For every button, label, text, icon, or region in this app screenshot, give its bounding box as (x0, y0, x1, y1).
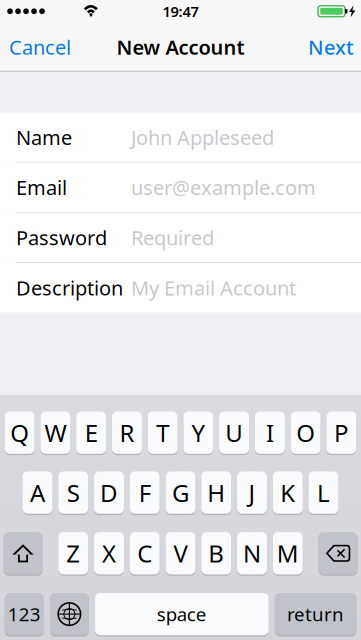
button[interactable]: L (308, 471, 338, 514)
staticText: G (172, 477, 189, 509)
button[interactable]: E (76, 411, 106, 454)
staticText: D (100, 477, 118, 509)
button[interactable]: return (275, 592, 356, 636)
button[interactable]: U (219, 411, 249, 454)
staticText: I (266, 417, 274, 449)
staticText: K (280, 477, 295, 509)
staticText: Next (308, 34, 354, 60)
staticText: Name (16, 124, 72, 150)
button[interactable]: Name (0, 112, 361, 162)
button[interactable]: 123 (5, 592, 44, 636)
staticText: Q (10, 417, 29, 449)
button[interactable]: Delete (318, 531, 357, 575)
staticText: A (30, 477, 45, 509)
staticText: 19:47 (162, 1, 198, 21)
staticText: H (207, 477, 225, 509)
staticText: O (296, 417, 315, 449)
staticText: Description (16, 274, 123, 301)
staticText: return (287, 602, 344, 626)
button[interactable]: C (130, 531, 160, 575)
button[interactable]: M (273, 531, 303, 575)
button[interactable]: O (291, 411, 321, 454)
staticText: L (317, 477, 330, 509)
staticText: Y (191, 417, 205, 449)
button[interactable]: W (40, 411, 70, 454)
button[interactable]: space (95, 592, 269, 636)
button[interactable]: A (22, 471, 52, 514)
staticText: Z (66, 537, 80, 569)
staticText: J (248, 477, 255, 509)
button[interactable]: G (165, 471, 195, 514)
button[interactable]: Next (296, 23, 361, 71)
staticText: E (85, 417, 98, 449)
staticText: B (208, 537, 224, 569)
staticText: C (137, 537, 152, 569)
staticText: John Appleseed (131, 124, 274, 150)
staticText: N (243, 537, 261, 569)
staticText: New Account (116, 34, 244, 60)
button[interactable]: T (148, 411, 178, 454)
staticText: Password (16, 224, 107, 251)
button[interactable]: I (255, 411, 285, 454)
button[interactable]: Q (5, 411, 35, 454)
staticText: Email (16, 174, 67, 201)
staticText: W (44, 417, 66, 449)
staticText: M (277, 537, 299, 569)
button[interactable]: S (58, 471, 88, 514)
button[interactable]: P (326, 411, 356, 454)
staticText: S (67, 477, 80, 509)
staticText: U (225, 417, 243, 449)
button[interactable]: B (201, 531, 231, 575)
button[interactable]: K (273, 471, 303, 514)
button[interactable]: V (166, 531, 195, 575)
button[interactable]: D (94, 471, 124, 514)
button[interactable]: Shift (3, 531, 42, 575)
staticText: Cancel (9, 34, 71, 60)
staticText: P (334, 417, 349, 449)
staticText: X (102, 537, 116, 569)
button[interactable]: Y (183, 411, 213, 454)
button[interactable]: J (237, 471, 267, 514)
staticText: V (173, 537, 187, 569)
button[interactable]: R (112, 411, 142, 454)
button[interactable]: Password (0, 213, 361, 262)
staticText: user@example.com (131, 174, 316, 201)
staticText: T (156, 417, 169, 449)
button[interactable]: Email (0, 163, 361, 212)
staticText: Required (131, 224, 214, 251)
button[interactable]: Switch keyboard (50, 592, 89, 636)
staticText: 123 (8, 602, 41, 626)
button[interactable]: X (94, 531, 124, 575)
staticText: My Email Account (131, 274, 296, 301)
button[interactable]: Z (58, 531, 88, 575)
button[interactable]: Description (0, 263, 361, 312)
button[interactable]: F (130, 471, 160, 514)
button[interactable]: Cancel (0, 23, 83, 71)
button[interactable]: H (201, 471, 231, 514)
staticText: F (139, 477, 151, 509)
button[interactable]: N (237, 531, 267, 575)
staticText: R (119, 417, 134, 449)
staticText: space (157, 602, 207, 626)
